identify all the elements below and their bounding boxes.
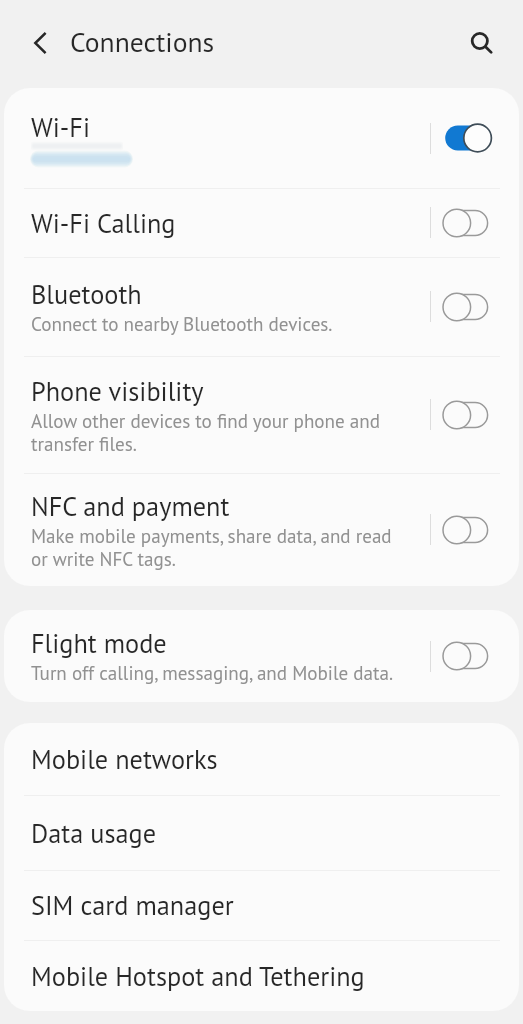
button[interactable]: Off [442, 398, 494, 432]
staticText: NFC and payment [31, 489, 230, 523]
button[interactable]: Off [442, 639, 494, 673]
button[interactable]: Search [459, 20, 505, 66]
staticText: SIM card manager [31, 888, 234, 922]
button[interactable]: Wi-Fi [4, 88, 519, 188]
staticText: Mobile Hotspot and Tethering [31, 959, 365, 993]
button[interactable]: SIM card manager [4, 870, 519, 940]
button[interactable]: Off [442, 290, 494, 324]
staticText: Connect to nearby Bluetooth devices. [31, 312, 333, 337]
staticText: Phone visibility [31, 374, 204, 408]
button[interactable]: NFC and payment [4, 473, 519, 586]
button[interactable]: Wi-Fi Calling [4, 188, 519, 257]
staticText: Flight mode [31, 626, 167, 660]
button[interactable]: Mobile Hotspot and Tethering [4, 940, 519, 1011]
staticText: Make mobile payments, share data, and re… [31, 524, 392, 571]
staticText: Wi-Fi [31, 110, 90, 144]
button[interactable]: On [442, 121, 494, 155]
staticText: Connections [70, 24, 215, 60]
staticText: Allow other devices to find your phone a… [31, 409, 381, 456]
staticText: Wi-Fi Calling [31, 206, 176, 240]
staticText: Data usage [31, 816, 156, 850]
button[interactable]: Data usage [4, 795, 519, 870]
button[interactable]: Navigate up [17, 20, 63, 66]
staticText: Turn off calling, messaging, and Mobile … [31, 661, 394, 686]
button[interactable]: Mobile networks [4, 723, 519, 795]
staticText: Bluetooth [31, 277, 142, 311]
staticText: Mobile networks [31, 742, 218, 776]
button[interactable]: Off [442, 206, 494, 240]
button[interactable]: Flight mode [4, 610, 519, 702]
button[interactable]: Bluetooth [4, 257, 519, 356]
button[interactable]: Phone visibility [4, 356, 519, 473]
button[interactable]: Off [442, 513, 494, 547]
